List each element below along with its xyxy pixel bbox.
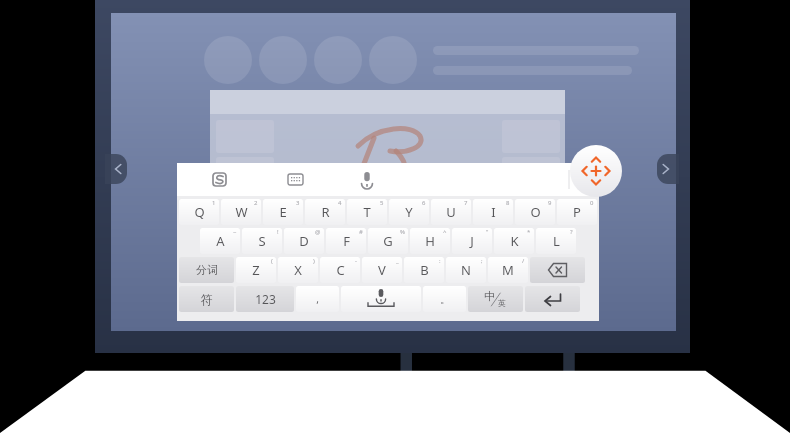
button[interactable]: Move keyboard [570,145,622,197]
staticText: 中 [484,289,495,303]
staticText: W [235,203,248,221]
button[interactable]: Space [341,286,421,312]
staticText: A [216,232,225,250]
button[interactable]: U [431,199,471,225]
staticText: : [439,257,441,265]
staticText: L [553,232,560,250]
staticText: H [425,232,435,250]
button[interactable]: Sogou menu [199,163,239,196]
button[interactable]: E [263,199,303,225]
staticText: E [279,203,287,221]
staticText: R [321,203,330,221]
staticText: - [355,257,357,265]
staticText: D [299,232,309,250]
staticText: ! [277,228,279,236]
button[interactable]: 分词 [179,257,234,283]
staticText: @ [315,228,321,236]
staticText: ? [570,228,573,236]
staticText: 1 [212,199,216,207]
staticText: ( [271,257,273,265]
button[interactable]: , [296,286,339,312]
button[interactable]: Backspace [530,257,585,283]
staticText: 5 [380,199,384,207]
staticText: N [461,261,471,279]
staticText: B [420,261,429,279]
staticText: U [446,203,456,221]
staticText: Z [252,261,260,279]
staticText: V [378,261,386,279]
staticText: S [258,232,266,250]
staticText: 4 [338,199,342,207]
staticText: # [359,228,363,236]
button[interactable]: L [536,228,576,254]
staticText: Y [405,203,413,221]
button[interactable]: F [326,228,366,254]
button[interactable]: Y [389,199,429,225]
staticText: ^ [443,228,447,236]
staticText: 2 [254,199,258,207]
staticText: X [294,261,302,279]
staticText: ~ [233,228,237,236]
button[interactable]: Previous [105,154,127,184]
button[interactable]: Enter [525,286,580,312]
button[interactable]: R [305,199,345,225]
staticText: I [491,203,496,221]
staticText: * [527,228,531,236]
staticText: % [400,228,405,236]
staticText: _ [396,257,399,265]
staticText: 英 [498,298,506,308]
staticText: P [573,203,581,221]
button[interactable]: N [446,257,486,283]
button[interactable]: M [488,257,528,283]
staticText: F [343,232,350,250]
button[interactable]: P [557,199,597,225]
staticText: K [510,232,519,250]
button[interactable]: V [362,257,402,283]
staticText: M [502,261,514,279]
staticText: 3 [296,199,300,207]
button[interactable]: C [320,257,360,283]
staticText: O [530,203,541,221]
button[interactable]: X [278,257,318,283]
button[interactable]: 123 [236,286,294,312]
staticText: 分词 [196,263,218,277]
button[interactable]: Keyboard layout [275,163,315,196]
button[interactable]: Next [657,154,679,184]
staticText: ) [313,257,315,265]
staticText: 123 [255,291,276,307]
button[interactable]: Q [179,199,219,225]
staticText: ; [481,257,483,265]
staticText: " [486,228,489,236]
button[interactable]: Voice input [347,163,387,196]
button[interactable]: W [221,199,261,225]
staticText: / [522,257,525,265]
button[interactable]: 符 [179,286,234,312]
button[interactable]: I [473,199,513,225]
staticText: Q [194,203,205,221]
staticText: T [363,203,371,221]
staticText: 7 [464,199,468,207]
staticText: G [383,232,393,250]
button[interactable]: T [347,199,387,225]
button[interactable]: G [368,228,408,254]
staticText: 9 [548,199,552,207]
staticText: 符 [201,292,213,307]
staticText: J [470,232,474,250]
staticText: C [336,261,345,279]
button[interactable]: D [284,228,324,254]
button[interactable]: 。 [423,286,466,312]
button[interactable]: S [242,228,282,254]
button[interactable]: A [200,228,240,254]
staticText: 0 [590,199,594,207]
staticText: 。 [440,293,450,306]
staticText: 6 [422,199,426,207]
button[interactable]: H [410,228,450,254]
button[interactable]: J [452,228,492,254]
button[interactable]: Z [236,257,276,283]
button[interactable]: Chinese English toggle [468,286,523,312]
staticText: 8 [506,199,510,207]
button[interactable]: B [404,257,444,283]
button[interactable]: O [515,199,555,225]
button[interactable]: K [494,228,534,254]
staticText: , [316,292,319,306]
